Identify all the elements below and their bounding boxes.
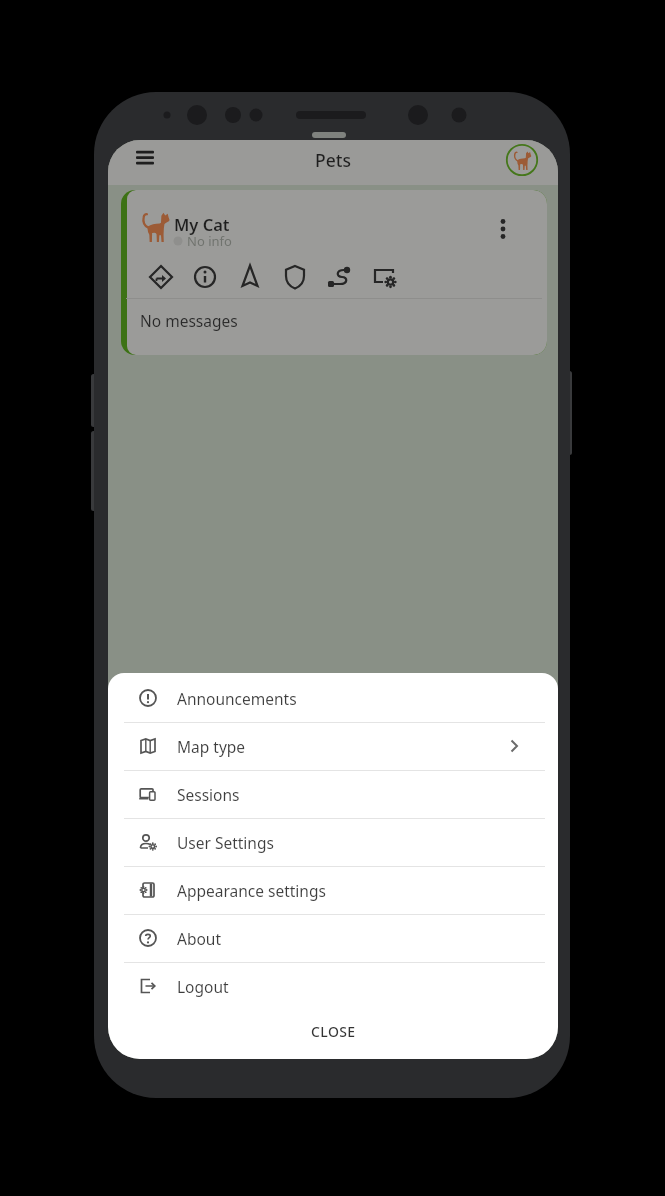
button[interactable]	[323, 261, 355, 293]
button[interactable]: CLOSE	[108, 1010, 558, 1052]
staticText: About	[177, 928, 221, 949]
button[interactable]: User Settings	[108, 818, 558, 866]
button[interactable]	[145, 261, 177, 293]
button[interactable]	[234, 261, 266, 293]
button[interactable]: Map type	[108, 722, 558, 770]
button[interactable]: Announcements	[108, 674, 558, 722]
button[interactable]: Sessions	[108, 770, 558, 818]
button[interactable]: Logout	[108, 962, 558, 1010]
button[interactable]: My Cat	[121, 190, 547, 355]
staticText: Sessions	[177, 784, 240, 805]
staticText: No messages	[140, 310, 238, 331]
button[interactable]	[368, 261, 400, 293]
staticText: User Settings	[177, 832, 274, 853]
staticText: Appearance settings	[177, 880, 326, 901]
staticText: Pets	[315, 148, 351, 172]
staticText: Announcements	[177, 688, 297, 709]
staticText: No info	[187, 232, 232, 250]
staticText: CLOSE	[311, 1022, 356, 1041]
staticText: Map type	[177, 736, 246, 757]
button[interactable]: About	[108, 914, 558, 962]
button[interactable]	[279, 261, 311, 293]
staticText: Logout	[177, 976, 229, 997]
button[interactable]	[128, 143, 162, 177]
staticText: My Cat	[174, 213, 230, 235]
button[interactable]	[505, 143, 539, 177]
button[interactable]	[189, 261, 221, 293]
button[interactable]: Appearance settings	[108, 866, 558, 914]
button[interactable]	[489, 215, 517, 243]
